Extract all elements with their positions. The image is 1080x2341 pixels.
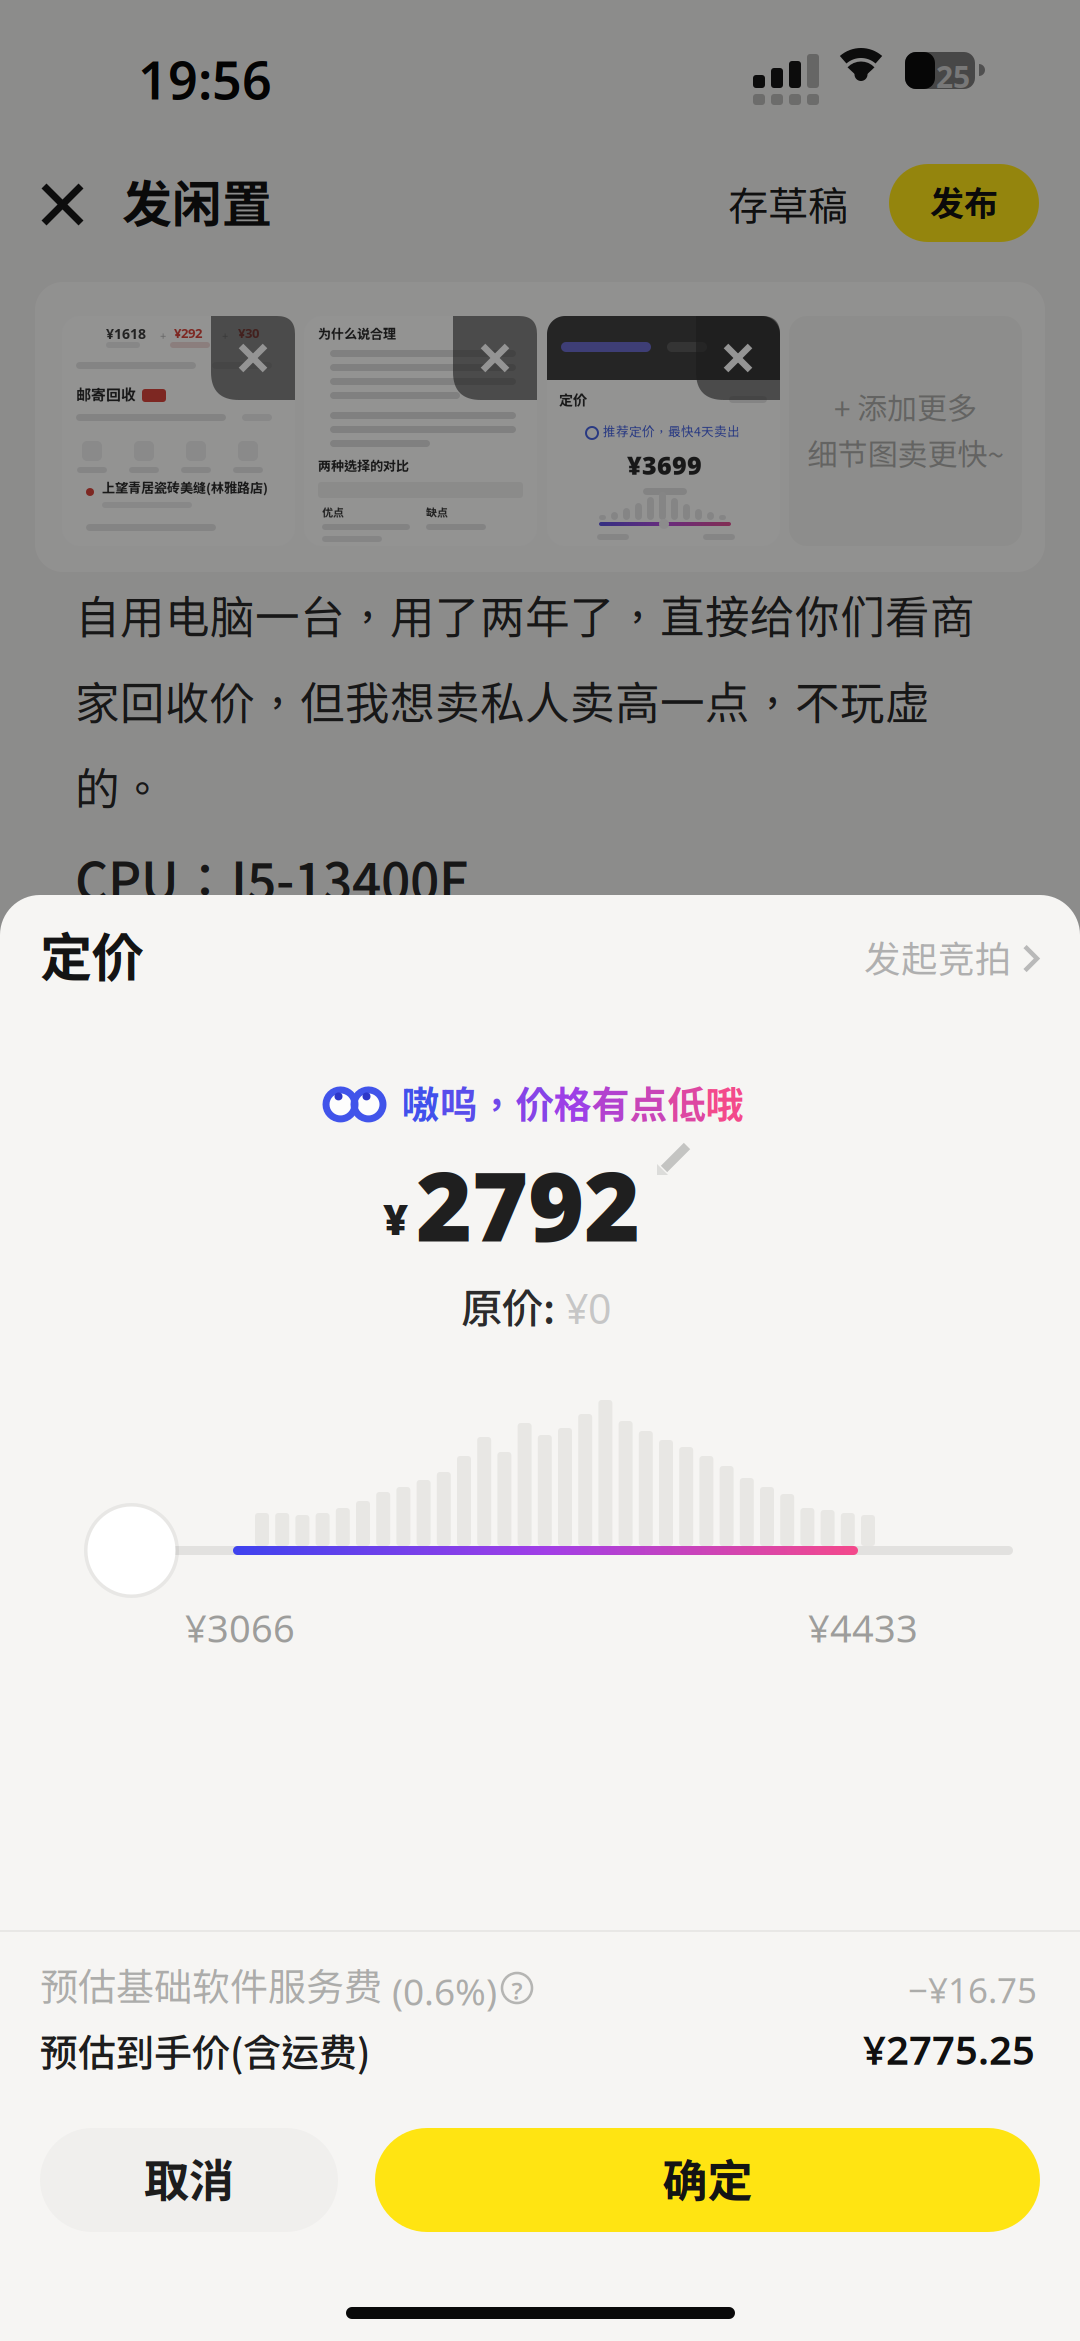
staticText: ¥1618 [106,324,146,343]
staticText: ¥0 [565,1280,611,1336]
staticText: ¥4433 [808,1602,918,1654]
staticText: 有 [591,1082,629,1127]
staticText: 19:56 [138,44,272,115]
staticText: 细节图卖更快~ [807,436,1003,472]
button[interactable]: 存草稿 [728,182,848,229]
staticText: 两种选择的对比 [318,458,409,473]
staticText: ， [477,1082,515,1127]
staticText: ¥3066 [185,1602,295,1654]
staticText: 呜 [439,1082,477,1127]
staticText: ¥3699 [627,448,702,482]
staticText: ¥30 [238,324,259,342]
staticText: 推荐定价，最快4天卖出 [603,424,740,439]
staticText: 邮寄回收 [76,386,136,404]
staticText: 预估到手价(含运费) [40,2030,370,2075]
staticText: 定价 [40,926,144,987]
staticText: 2792 [416,1139,640,1270]
staticText: 原价: [461,1284,555,1332]
staticText: + 添加更多 [834,390,977,425]
button[interactable]: 确定 [375,2128,1040,2232]
staticText: 优点 [322,506,344,519]
staticText: 家回收价，但我想卖私人卖高一点，不玩虚 [75,676,930,729]
button[interactable] [696,316,780,400]
button[interactable]: + 添加更多 [789,316,1022,546]
staticText: 发起竞拍 [864,937,1012,980]
staticText: 为什么说合理 [318,326,396,341]
staticText: ¥292 [174,324,202,342]
staticText: 确定 [662,2153,752,2207]
staticText: ¥2775.25 [863,2022,1035,2076]
staticText: 哦 [705,1082,743,1127]
staticText: 预估基础软件服务费 [40,1964,382,2009]
staticText: + [160,328,166,343]
staticText: 发闲置 [122,174,272,233]
button[interactable] [84,1503,179,1598]
button[interactable] [211,316,295,400]
button[interactable]: 取消 [40,2128,338,2232]
staticText: 25 [936,56,970,97]
staticText: 点 [629,1082,667,1127]
button[interactable] [41,183,84,226]
staticText: 缺点 [426,506,448,519]
staticText: 发布 [930,183,998,223]
button[interactable]: 发起竞拍 [740,937,1040,980]
staticText: + [222,328,228,343]
button[interactable] [453,316,537,400]
staticText: 存草稿 [728,182,848,229]
staticText: CPU：I5-13400F [75,849,468,910]
staticText: ? [511,1974,522,2007]
staticText: 自用电脑一台，用了两年了，直接给你们看商 [75,590,975,643]
staticText: ¥ [383,1189,408,1247]
staticText: 上望青居瓷砖美缝(林雅路店) [102,480,268,495]
staticText: (0.6%) [392,1966,497,2016]
staticText: 取消 [144,2153,234,2207]
staticText: 价 [515,1082,553,1127]
staticText: −¥16.75 [908,1966,1037,2014]
staticText: 定价 [559,392,587,408]
staticText: 的。 [75,762,165,815]
staticText: 格 [553,1082,591,1127]
staticText: 低 [667,1082,705,1127]
button[interactable]: 发布 [889,164,1039,242]
staticText: 嗷 [401,1082,439,1127]
